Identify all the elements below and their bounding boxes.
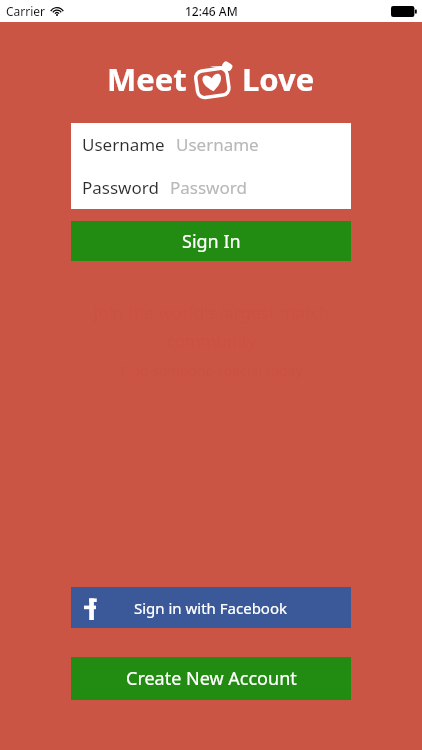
staticText: Create New Account [126, 666, 297, 691]
staticText: Password [170, 176, 247, 199]
staticText: Username [82, 133, 165, 156]
button[interactable]: Sign In [71, 221, 351, 261]
button[interactable]: Create New Account [71, 657, 351, 700]
staticText: Password [82, 176, 159, 199]
button[interactable]: Facebook logo [71, 587, 351, 628]
staticText: Carrier [6, 3, 46, 19]
staticText: Username [176, 133, 259, 156]
staticText: 12:46 AM [185, 3, 238, 19]
other: Facebook logo [84, 596, 97, 620]
staticText: Meet [107, 58, 187, 100]
button[interactable]: Password [82, 166, 351, 209]
button[interactable]: Username [82, 123, 351, 166]
staticText: Love [242, 58, 315, 100]
staticText: Sign in with Facebook [134, 598, 288, 618]
staticText: Sign In [182, 229, 241, 254]
